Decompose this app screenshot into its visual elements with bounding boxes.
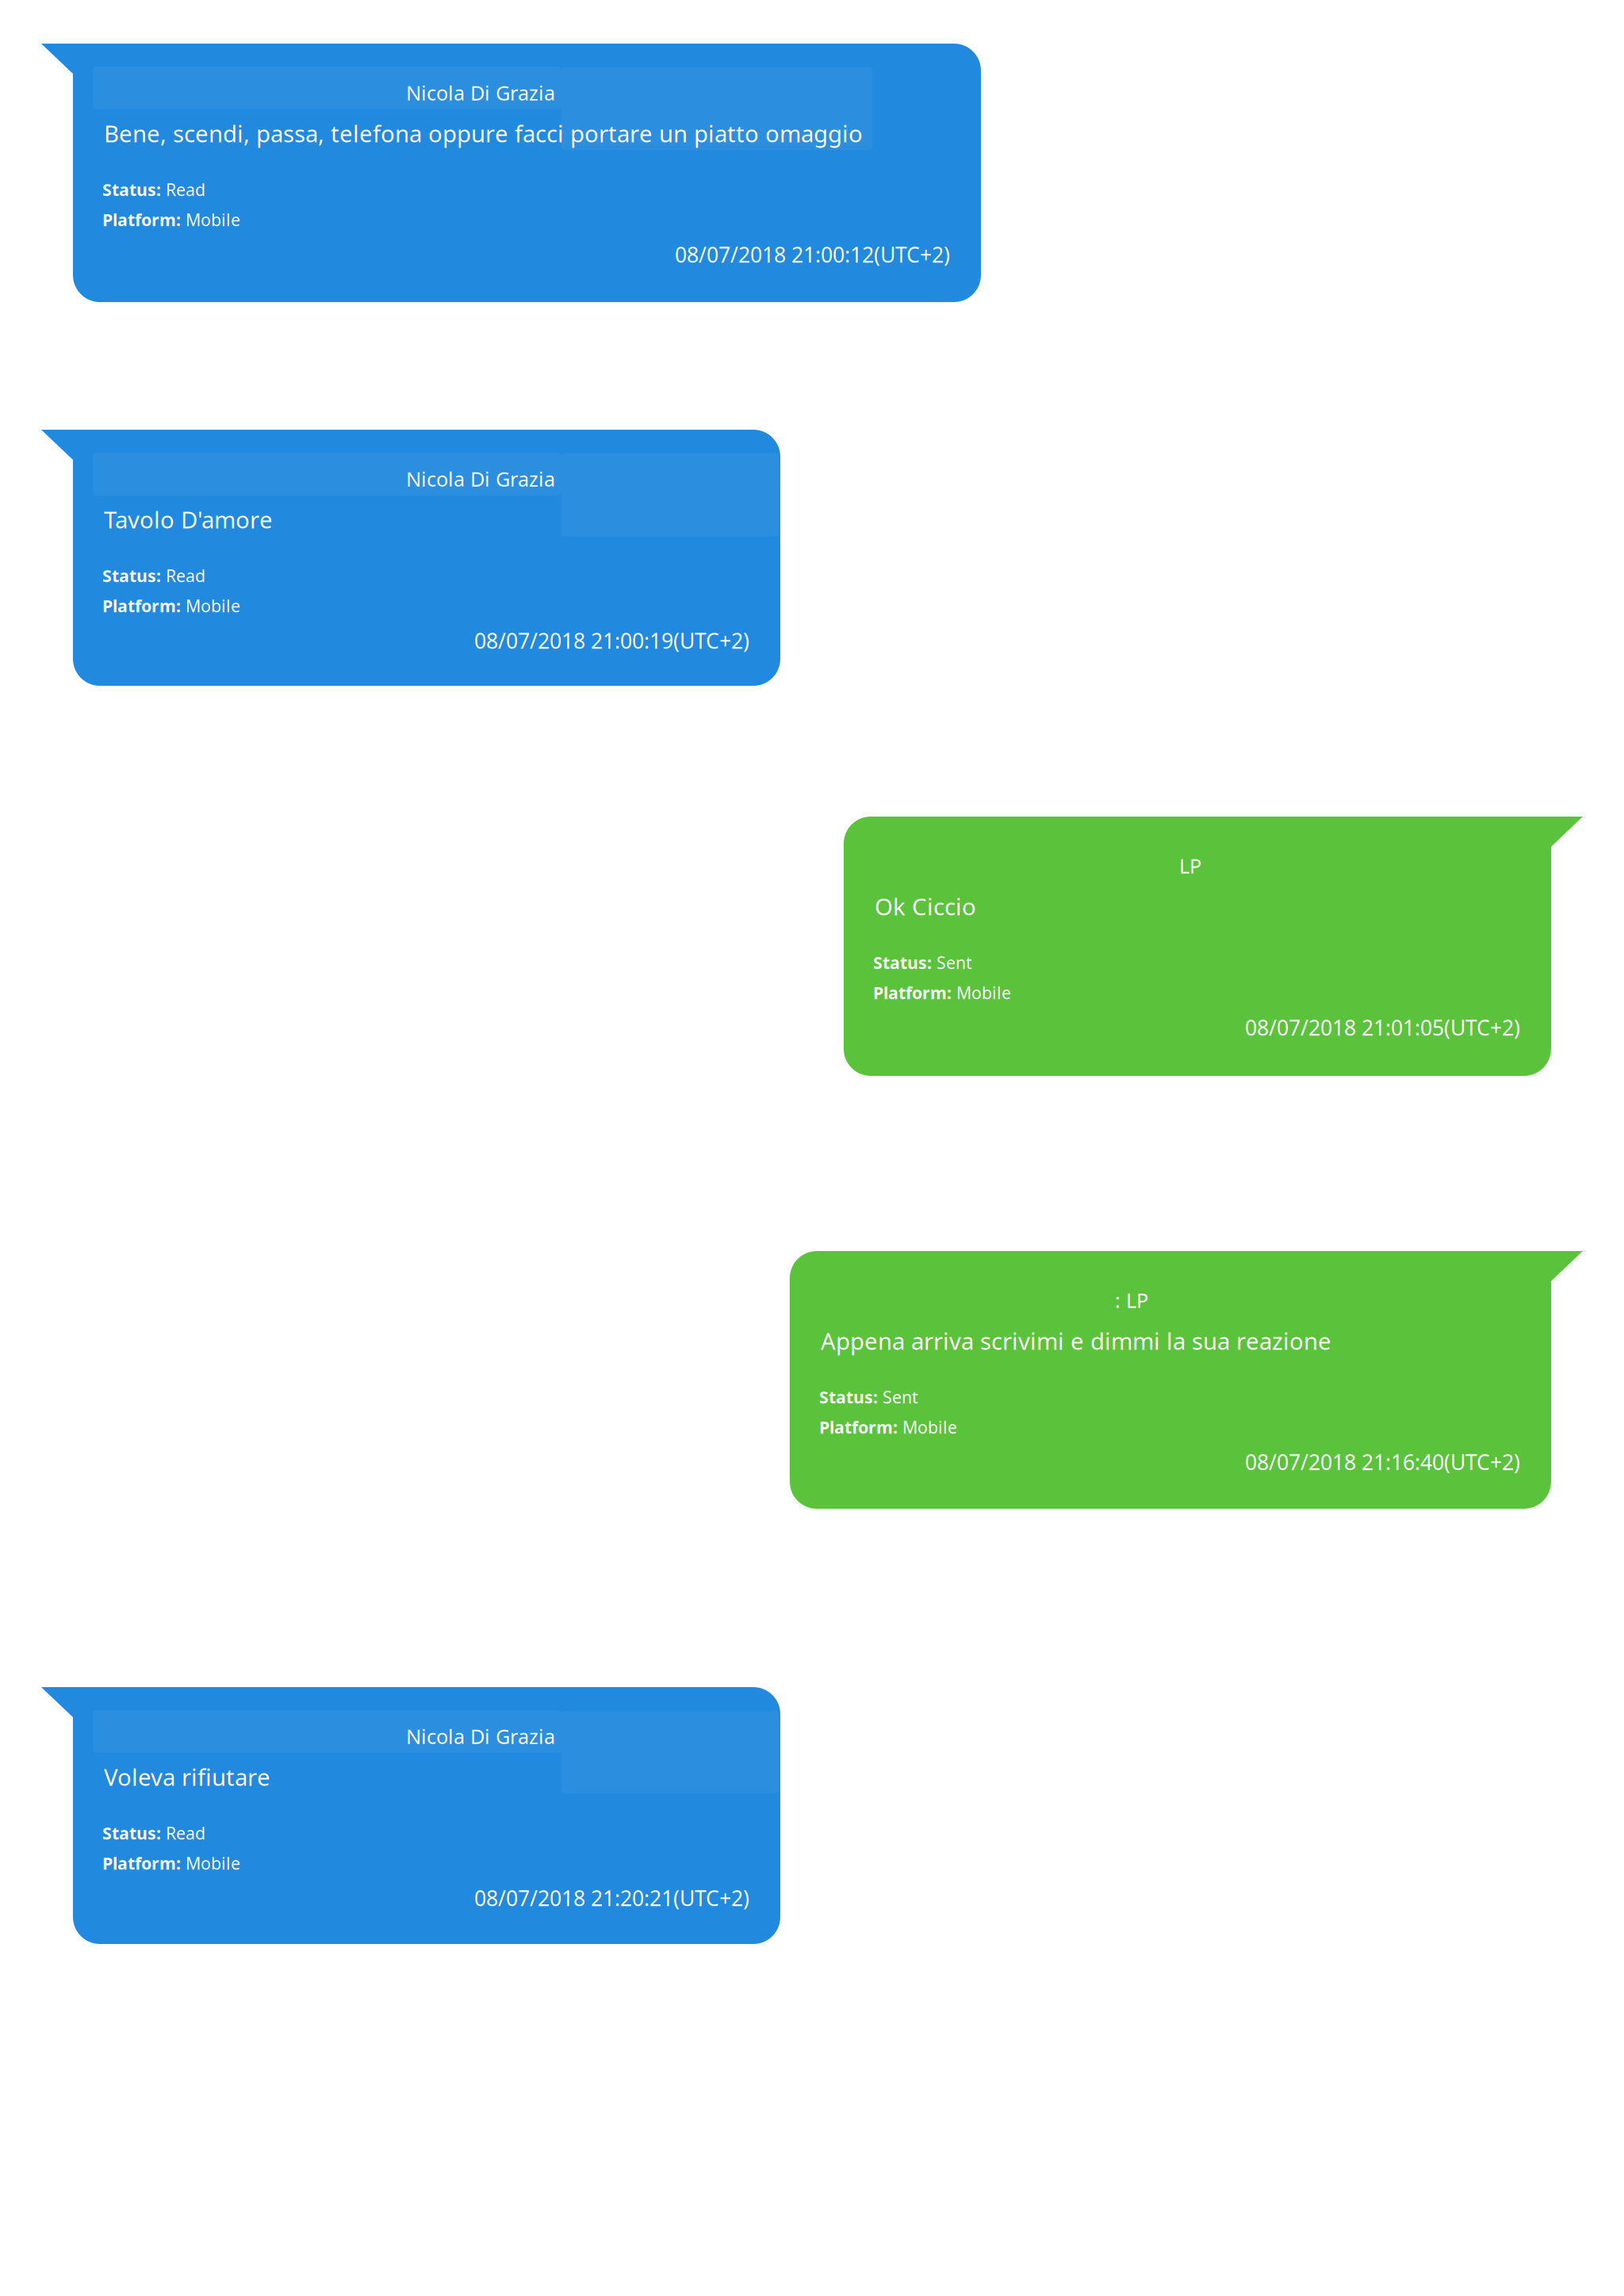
staticText: Status: Sent	[873, 951, 972, 974]
button[interactable]: LP	[844, 817, 1583, 1076]
staticText: Platform: Mobile	[102, 594, 240, 617]
staticText: Tavolo D'amore	[104, 504, 273, 535]
staticText: Platform: Mobile	[873, 981, 1011, 1004]
staticText: Nicola Di Grazia	[406, 466, 555, 492]
button[interactable]: Nicola Di Grazia	[41, 430, 780, 686]
staticText: 08/07/2018 21:20:21(UTC+2)	[474, 1884, 749, 1912]
staticText: Bene, scendi, passa, telefona oppure fac…	[104, 118, 863, 149]
staticText: 08/07/2018 21:01:05(UTC+2)	[1245, 1013, 1520, 1042]
button[interactable]: Nicola Di Grazia	[41, 1687, 780, 1944]
staticText: 08/07/2018 21:16:40(UTC+2)	[1245, 1448, 1520, 1476]
staticText: Status: Sent	[819, 1386, 918, 1408]
staticText: Status: Read	[102, 1822, 205, 1844]
staticText: Voleva rifiutare	[104, 1761, 270, 1792]
staticText: LP	[1179, 852, 1201, 879]
staticText: Nicola Di Grazia	[406, 1723, 555, 1750]
staticText: Ok Ciccio	[875, 891, 976, 922]
staticText: Nicola Di Grazia	[406, 79, 555, 106]
staticText: Platform: Mobile	[819, 1416, 957, 1438]
staticText: 08/07/2018 21:00:19(UTC+2)	[474, 627, 749, 655]
staticText: 08/07/2018 21:00:12(UTC+2)	[675, 240, 950, 269]
staticText: Status: Read	[102, 178, 205, 201]
staticText: Platform: Mobile	[102, 1852, 240, 1874]
staticText: Platform: Mobile	[102, 208, 240, 231]
staticText: : LP	[1115, 1287, 1148, 1314]
button[interactable]: Nicola Di Grazia	[41, 44, 981, 302]
staticText: Status: Read	[102, 564, 205, 587]
staticText: Appena arriva scrivimi e dimmi la sua re…	[821, 1325, 1331, 1356]
button[interactable]: : LP	[790, 1251, 1583, 1509]
